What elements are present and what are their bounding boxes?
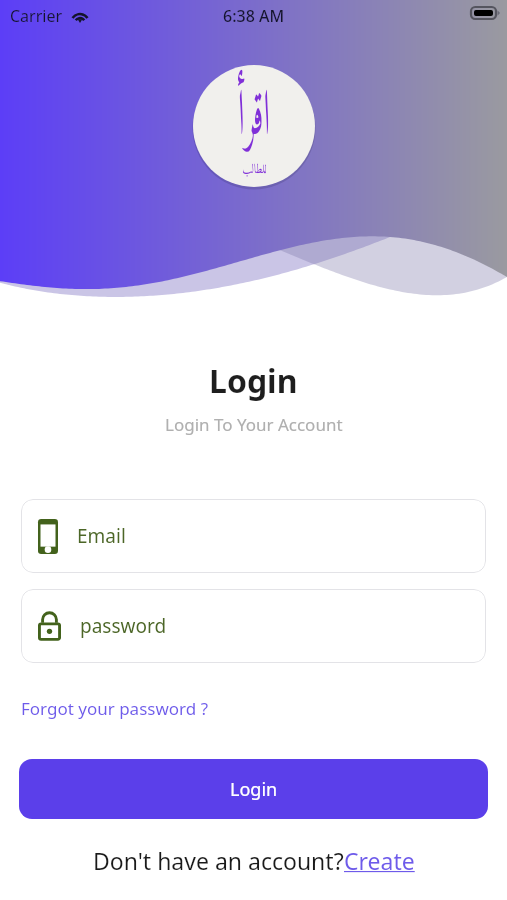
button[interactable]: Email [21, 499, 486, 573]
staticText: اقرأ [238, 65, 270, 174]
staticText: Login [209, 359, 298, 403]
button[interactable]: password [21, 589, 486, 663]
button[interactable]: Forgot your password ? [21, 697, 209, 720]
staticText: Login [230, 777, 278, 802]
staticText: Don't have an account? [93, 845, 344, 876]
button[interactable]: Create [344, 845, 415, 876]
staticText: Login To Your Account [165, 413, 343, 436]
staticText: password [80, 613, 167, 639]
staticText: 6:38 AM [223, 5, 285, 27]
button[interactable]: Login [19, 759, 488, 819]
staticText: Carrier [10, 5, 63, 27]
staticText: Email [77, 523, 126, 549]
staticText: للطالب [242, 158, 267, 181]
